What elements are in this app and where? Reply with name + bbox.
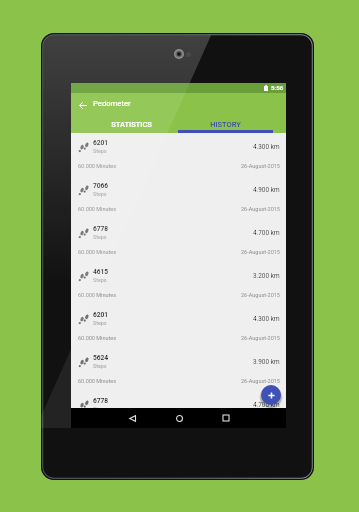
button[interactable]: 6778 <box>71 219 286 262</box>
button[interactable]: HISTORY <box>178 117 273 133</box>
button[interactable]: Home <box>172 411 186 425</box>
staticText: HISTORY <box>210 120 241 129</box>
staticText: STATISTICS <box>111 120 152 129</box>
staticText: 4615 <box>93 268 109 276</box>
staticText: 60.000 Minutes <box>78 206 117 212</box>
staticText: 4.900 km <box>253 186 280 194</box>
staticText: 26-August-2015 <box>241 292 280 298</box>
staticText: 6201 <box>93 311 109 319</box>
staticText: 6778 <box>93 225 109 233</box>
staticText: 26-August-2015 <box>241 378 280 384</box>
staticText: Steps <box>93 234 107 240</box>
staticText: 26-August-2015 <box>241 163 280 169</box>
button[interactable]: Add entry <box>261 385 281 405</box>
button[interactable]: 6201 <box>71 305 286 348</box>
staticText: 26-August-2015 <box>241 206 280 212</box>
staticText: Steps <box>93 363 107 369</box>
button[interactable]: Recent apps <box>219 411 233 425</box>
staticText: Steps <box>93 148 107 154</box>
staticText: 60.000 Minutes <box>78 163 117 169</box>
staticText: 26-August-2015 <box>241 335 280 341</box>
staticText: Steps <box>93 191 107 197</box>
staticText: 6201 <box>93 139 109 147</box>
staticText: 7066 <box>93 182 109 190</box>
staticText: 60.000 Minutes <box>78 335 117 341</box>
staticText: 3.200 km <box>253 272 280 280</box>
button[interactable]: Navigate up <box>75 97 91 113</box>
staticText: 4.700 km <box>253 401 280 409</box>
staticText: 6778 <box>93 397 109 405</box>
staticText: Pedometer <box>93 99 131 108</box>
staticText: 4.300 km <box>253 315 280 323</box>
button[interactable]: 5624 <box>71 348 286 391</box>
button[interactable]: 6778 <box>71 391 286 428</box>
button[interactable]: 7066 <box>71 176 286 219</box>
button[interactable]: Back <box>125 411 139 425</box>
staticText: Steps <box>93 277 107 283</box>
staticText: 4.700 km <box>253 229 280 237</box>
staticText: 5:56 <box>271 84 284 91</box>
staticText: 60.000 Minutes <box>78 249 117 255</box>
button[interactable]: 4615 <box>71 262 286 305</box>
staticText: 26-August-2015 <box>241 249 280 255</box>
staticText: 4.300 km <box>253 143 280 151</box>
staticText: Steps <box>93 320 107 326</box>
staticText: 5624 <box>93 354 109 362</box>
staticText: Steps <box>93 406 107 412</box>
button[interactable]: 6201 <box>71 133 286 176</box>
button[interactable]: STATISTICS <box>84 117 178 133</box>
staticText: 3.900 km <box>253 358 280 366</box>
staticText: 60.000 Minutes <box>78 378 117 384</box>
staticText: 60.000 Minutes <box>78 292 117 298</box>
